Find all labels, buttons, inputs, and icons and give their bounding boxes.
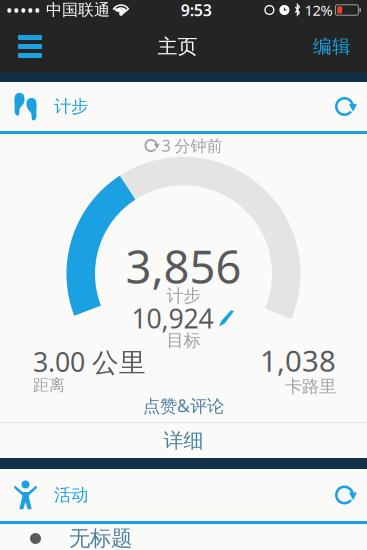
button[interactable]: 详细 bbox=[0, 423, 367, 458]
staticText: 中国联通 bbox=[41, 0, 115, 20]
staticText: 计步 bbox=[54, 96, 88, 117]
button[interactable]: Refresh bbox=[322, 471, 367, 518]
button[interactable]: Refresh bbox=[322, 83, 367, 130]
staticText: 活动 bbox=[54, 484, 88, 506]
staticText: 12% bbox=[304, 0, 332, 20]
staticText: ••••• bbox=[6, 0, 41, 21]
staticText: 主页 bbox=[157, 34, 197, 59]
staticText: 无标题 bbox=[69, 525, 132, 550]
staticText: 1,038 bbox=[260, 341, 336, 380]
button[interactable]: Menu bbox=[0, 21, 56, 72]
staticText: 点赞&评论 bbox=[143, 394, 224, 417]
staticText: 目标 bbox=[166, 330, 200, 351]
staticText: 10,924 bbox=[131, 300, 213, 336]
staticText: 距离 bbox=[33, 375, 65, 395]
staticText: 3.00 公里 bbox=[33, 344, 146, 379]
staticText: 3 分钟前 bbox=[161, 135, 222, 156]
staticText: 卡路里 bbox=[285, 376, 336, 397]
staticText: 9:53 bbox=[181, 0, 212, 21]
staticText: 编辑 bbox=[313, 35, 351, 58]
staticText: 3,856 bbox=[125, 236, 241, 296]
button[interactable]: 编辑 bbox=[299, 21, 367, 72]
staticText: 计步 bbox=[166, 285, 200, 306]
staticText: 详细 bbox=[163, 428, 203, 453]
button[interactable]: 点赞&评论 bbox=[0, 389, 367, 422]
